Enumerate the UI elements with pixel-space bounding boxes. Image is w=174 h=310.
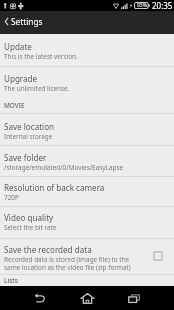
staticText: Lists (4, 276, 18, 285)
staticText: The unlimited license. (4, 84, 70, 93)
staticText: Save location (4, 121, 55, 132)
button[interactable]: Home (67, 286, 107, 310)
staticText: Recorded data is stored (image file) to … (4, 255, 131, 272)
staticText: Video quality (4, 212, 54, 223)
button[interactable]: Save location (0, 114, 174, 145)
staticText: Save the recorded data (4, 244, 92, 255)
staticText: Internal storage (4, 132, 53, 141)
button[interactable]: Back (19, 286, 59, 310)
button[interactable]: Resolution of back camera (0, 177, 174, 206)
button[interactable]: Save the recorded data (0, 239, 174, 274)
button[interactable]: Video quality (0, 207, 174, 238)
staticText: Update (4, 41, 32, 52)
button[interactable]: Navigate up (2, 12, 10, 30)
staticText: /storage/emulated/0/Movies/EasyLapse (4, 163, 124, 172)
button[interactable]: Update (0, 34, 174, 66)
staticText: Upgrade (4, 73, 38, 84)
staticText: Resolution of back camera (4, 182, 105, 193)
button[interactable]: Upgrade (0, 67, 174, 100)
staticText: Save folder (4, 152, 47, 163)
staticText: Select the bit rate (4, 223, 57, 232)
staticText: 93% (137, 2, 147, 9)
staticText: This is the latest version. (4, 52, 78, 61)
staticText: Settings (11, 16, 43, 27)
button[interactable]: Save folder (0, 146, 174, 176)
button[interactable]: Recent apps (114, 286, 154, 310)
staticText: MOVIE (4, 101, 25, 110)
staticText: 720P (4, 193, 19, 202)
staticText: 20:35 (152, 0, 173, 11)
